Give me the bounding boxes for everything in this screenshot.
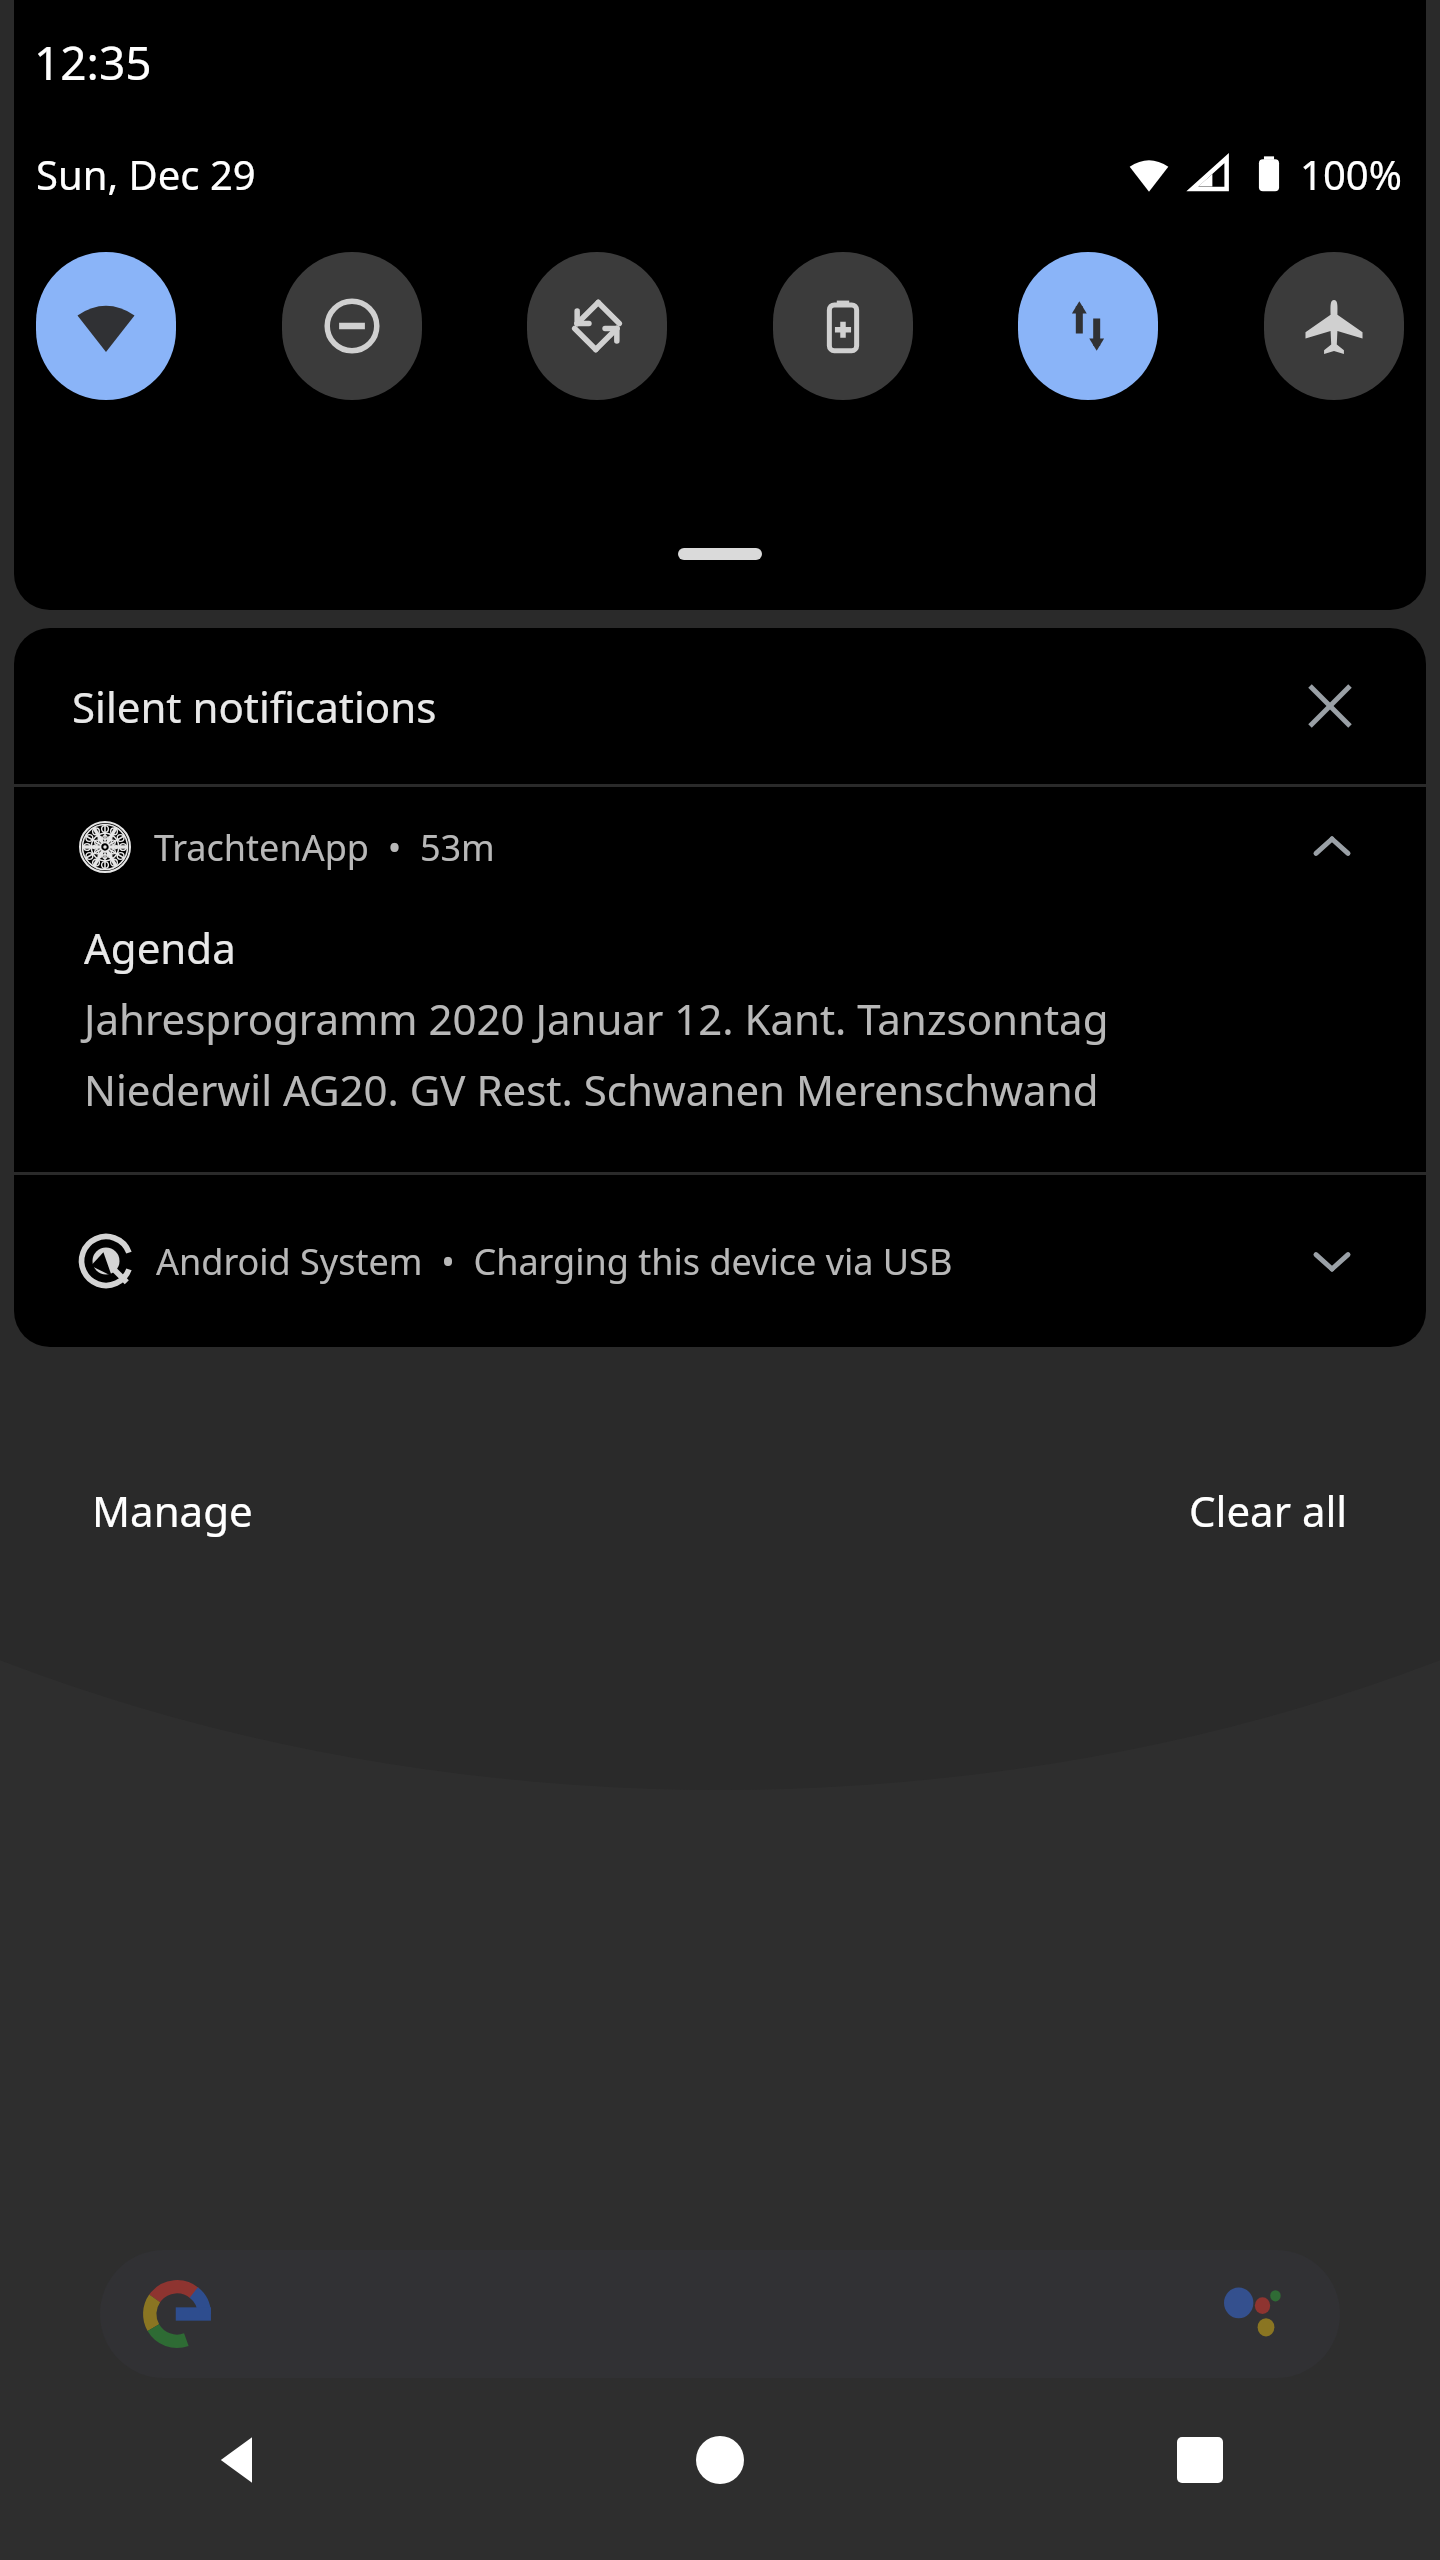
staticText: Sun, Dec 29 [36,147,256,201]
button[interactable]: Clear silent notifications [1292,668,1368,744]
button[interactable]: Back [0,2360,480,2560]
staticText: Niederwil AG20. GV Rest. Schwanen Merens… [84,1061,1099,1118]
staticText: Manage [92,1482,253,1539]
staticText: Silent notifications [72,678,437,735]
button[interactable]: Manage [60,1462,285,1559]
button[interactable]: Collapse [1296,811,1368,883]
button[interactable]: Android System [14,1175,1426,1347]
staticText: Jahresprogramm 2020 Januar 12. Kant. Tan… [84,990,1109,1047]
button[interactable]: Expand [1296,1225,1368,1297]
other: TrachtenApp [80,822,130,872]
button[interactable]: Clear all [1157,1462,1380,1559]
staticText: 100% [1300,147,1402,201]
button[interactable]: Airplane mode [1264,252,1404,400]
button[interactable]: Auto-rotate [527,252,667,400]
staticText: Agenda [84,919,236,976]
other: Android System [80,1235,132,1287]
staticText: Clear all [1189,1482,1348,1539]
button[interactable]: Do Not Disturb [282,252,422,400]
other: Google Assistant [1224,2279,1294,2349]
other: Google [146,2283,208,2345]
button[interactable]: Wi-Fi [36,252,176,400]
staticText: TrachtenApp • 53m [154,823,495,872]
button[interactable]: Home [480,2360,960,2560]
button[interactable]: TrachtenApp [14,787,1426,1172]
staticText: Android System • Charging this device vi… [156,1237,953,1286]
button[interactable]: Google [100,2250,1340,2378]
button[interactable]: Recent apps [960,2360,1440,2560]
staticText: 12:35 [34,31,152,94]
button[interactable]: Battery Saver [773,252,913,400]
button[interactable]: Mobile data [1018,252,1158,400]
